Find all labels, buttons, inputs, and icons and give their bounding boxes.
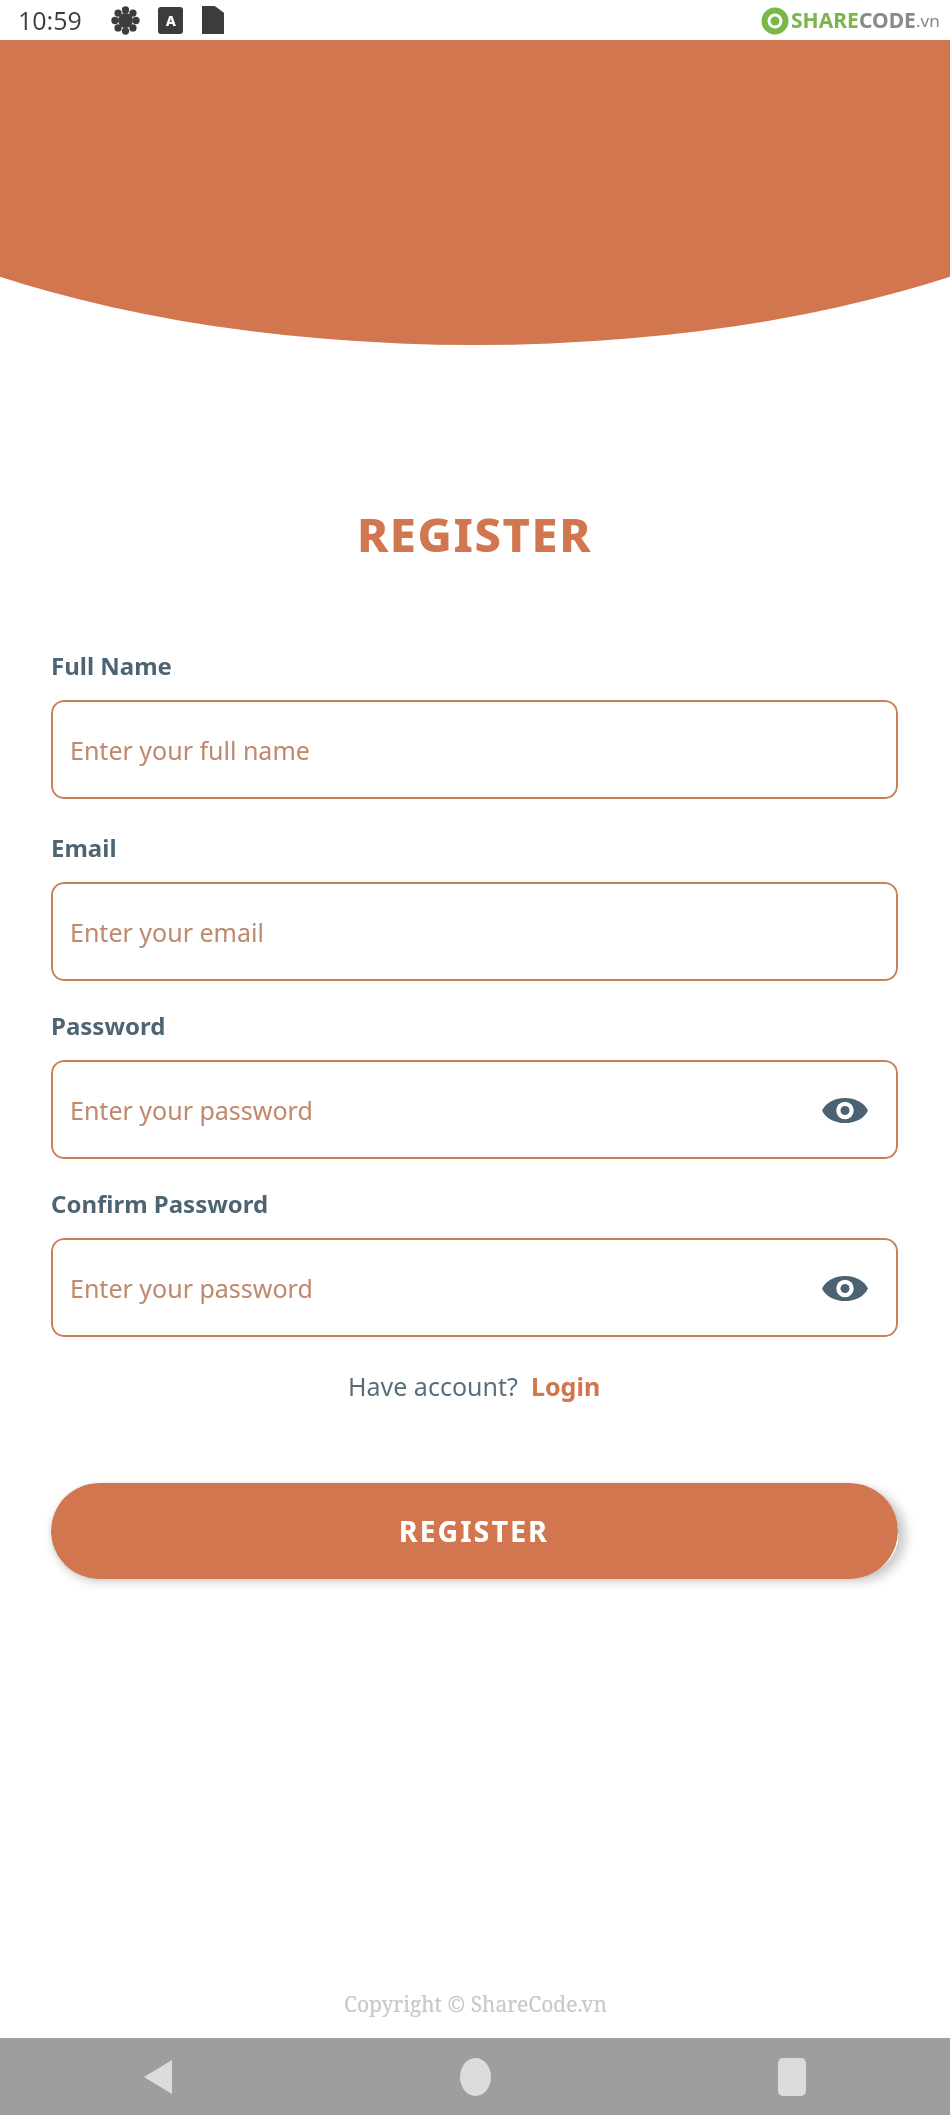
staticText: 10:59 bbox=[18, 3, 82, 37]
staticText: Enter your email bbox=[70, 915, 264, 949]
staticText: REGISTER bbox=[399, 1512, 550, 1550]
button[interactable]: Enter your password bbox=[51, 1238, 898, 1337]
staticText: Enter your password bbox=[70, 1271, 313, 1305]
button[interactable]: Home bbox=[430, 2038, 520, 2115]
button[interactable]: Toggle password visibility bbox=[817, 1082, 873, 1138]
button[interactable]: Back bbox=[113, 2038, 203, 2115]
staticText: Enter your password bbox=[70, 1093, 313, 1127]
staticText: Full Name bbox=[51, 649, 172, 682]
staticText: Enter your full name bbox=[70, 733, 310, 767]
staticText: Login bbox=[531, 1369, 601, 1403]
button[interactable]: Recent apps bbox=[747, 2038, 837, 2115]
staticText: CODE bbox=[859, 6, 916, 35]
button[interactable]: Toggle password visibility bbox=[817, 1260, 873, 1316]
button[interactable]: Enter your password bbox=[51, 1060, 898, 1159]
button[interactable]: REGISTER bbox=[51, 1483, 898, 1579]
staticText: Email bbox=[51, 831, 117, 864]
staticText: Password bbox=[51, 1009, 166, 1042]
staticText: REGISTER bbox=[357, 502, 593, 566]
staticText: Copyright © ShareCode.vn bbox=[344, 1990, 607, 2019]
button[interactable]: Login bbox=[531, 1369, 601, 1403]
staticText: .vn bbox=[916, 9, 940, 32]
staticText: SHARE bbox=[791, 6, 859, 35]
staticText: Confirm Password bbox=[51, 1187, 269, 1220]
button[interactable]: Enter your full name bbox=[51, 700, 898, 799]
button[interactable]: Enter your email bbox=[51, 882, 898, 981]
staticText: Have account? bbox=[348, 1369, 531, 1403]
staticText: A bbox=[166, 11, 176, 30]
